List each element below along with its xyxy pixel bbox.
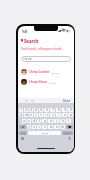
button[interactable]: 5 [39,108,43,112]
staticText: 0 [70,108,72,112]
button[interactable]: 1 [19,108,23,112]
button[interactable]: e [29,113,33,117]
staticText: t [40,113,42,117]
button[interactable]: r [34,113,38,117]
button[interactable]: 8 [56,108,61,112]
button[interactable]: 2 [24,108,28,112]
button[interactable]: b [48,125,53,129]
button[interactable]: y [27,125,31,129]
staticText: u [52,113,54,117]
staticText: p [70,113,72,117]
button[interactable] [19,125,26,129]
button[interactable]: Chrissi Kraus [18,77,74,87]
staticText: 1 [20,108,22,112]
button[interactable]: l [66,119,71,123]
button[interactable]: 7 [50,108,55,112]
button[interactable]: p [68,113,73,117]
staticText: c [38,125,40,129]
staticText: y [28,125,30,129]
staticText: 2 [25,108,27,112]
button[interactable]: c [37,125,41,129]
button[interactable]: search [62,131,73,135]
staticText: w [25,113,28,117]
button[interactable]: s [27,119,31,123]
staticText: a [23,119,25,123]
button[interactable]: q [19,113,23,117]
staticText: r [35,113,37,117]
staticText: h [50,119,52,123]
button[interactable]: w [24,113,28,117]
staticText: m [61,125,64,129]
button[interactable]: Previous field [25,100,28,102]
button[interactable]: Done [63,99,71,103]
staticText: b [50,125,52,129]
staticText: Chrissi Kraus [29,80,47,84]
button[interactable]: i [56,113,61,117]
staticText: i [58,113,59,117]
button[interactable]: u [50,113,55,117]
staticText: 6 [46,108,48,112]
staticText: Chrissi Lenkeit [29,70,50,74]
button[interactable]: Next field [31,100,34,102]
staticText: q [20,113,22,117]
button[interactable]: f [37,119,41,123]
staticText: k [62,119,64,123]
staticText: s [28,119,30,123]
staticText: search [64,132,71,135]
staticText: d [33,119,35,123]
button[interactable]: Chrissi [21,56,71,62]
button[interactable]: v [42,125,47,129]
button[interactable]: 0 [68,108,73,112]
button[interactable]: 4 [34,108,38,112]
staticText: v [44,125,46,129]
staticText: j [56,119,57,123]
staticText: 5 [40,108,42,112]
button[interactable]: 3 [29,108,33,112]
button[interactable]: h [48,119,53,123]
button[interactable]: m [60,125,65,129]
button[interactable]: Chrissi Lenkeit [18,67,74,77]
button[interactable]: 123 [19,131,27,135]
button[interactable]: Dictate [68,137,71,140]
button[interactable]: g [42,119,47,123]
staticText: n [56,125,58,129]
staticText: 7 [52,108,54,112]
staticText: 9 [64,108,66,112]
staticText: g [44,119,46,123]
button[interactable] [66,125,73,129]
staticText: 3 [30,108,32,112]
button[interactable]: n [54,125,59,129]
staticText: 9:41 [22,30,28,34]
staticText: e [30,113,32,117]
staticText: o [64,113,66,117]
staticText: f [39,119,40,123]
button[interactable]: Emoji keyboard [21,137,24,140]
staticText: z [46,113,48,117]
button[interactable]: a [22,119,26,123]
staticText: 17 min [48,81,57,84]
button[interactable]: k [60,119,65,123]
button[interactable]: 6 [44,108,49,112]
staticText: space [42,132,48,135]
button[interactable]: z [44,113,49,117]
button[interactable]: d [32,119,36,123]
button[interactable]: space [28,131,61,135]
staticText: 25 min [51,71,60,74]
button[interactable]: o [62,113,67,117]
button[interactable]: 9 [62,108,67,112]
staticText: 4 [35,108,37,112]
button[interactable]: t [39,113,43,117]
button[interactable]: x [32,125,36,129]
staticText: l [68,119,69,123]
staticText: x [33,125,35,129]
staticText: Chrissi [23,57,32,61]
staticText: Search [24,38,39,44]
staticText: 8 [58,108,60,112]
button[interactable]: j [54,119,59,123]
staticText: 123 [21,132,25,135]
staticText: Find friends, colleagues or both. [21,47,63,51]
